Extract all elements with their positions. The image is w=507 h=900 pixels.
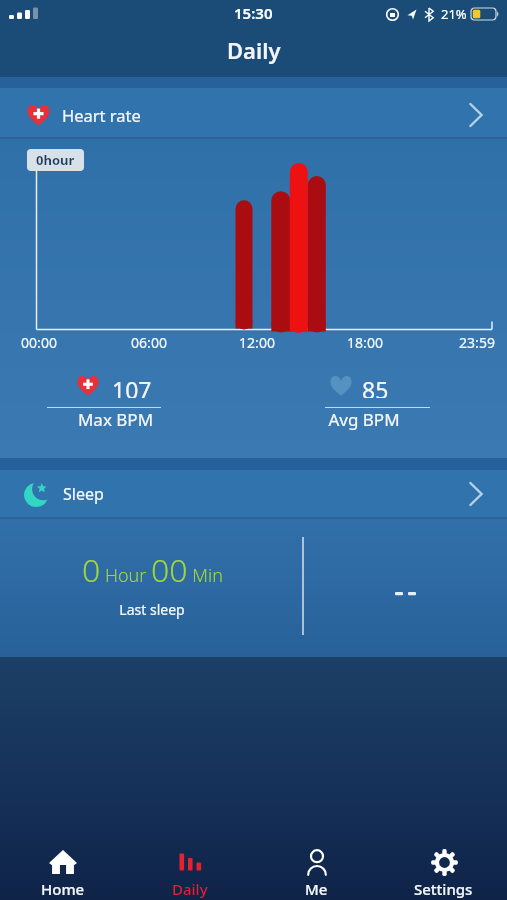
button[interactable]: Me [253,848,380,900]
staticText: 23:59 [447,333,507,352]
staticText: Sleep [63,483,104,505]
staticText: 18:00 [335,333,395,352]
staticText: 00:00 [9,333,69,352]
staticText: 12:00 [227,333,287,352]
staticText: Daily [227,35,281,65]
staticText: 21% [441,5,467,23]
staticText: 85 [362,374,389,398]
button[interactable]: Sleep [0,470,507,517]
staticText: 107 [112,374,152,398]
staticText: 06:00 [119,333,179,352]
staticText: Avg BPM [316,408,412,431]
staticText: Home [41,879,85,899]
staticText: Me [305,879,328,899]
staticText: Daily [172,879,208,899]
button[interactable]: Daily [126,848,253,900]
staticText: Last sleep [112,600,192,619]
staticText: Max BPM [68,408,163,431]
staticText: 0hour [36,151,75,169]
staticText: 0 Hour 00 Min [82,548,223,592]
button[interactable]: Home [0,848,126,900]
button[interactable]: Settings [380,848,507,900]
staticText: Settings [414,879,473,899]
staticText: Heart rate [62,104,141,126]
staticText: 15:30 [234,3,273,23]
button[interactable]: Heart rate [0,93,507,137]
